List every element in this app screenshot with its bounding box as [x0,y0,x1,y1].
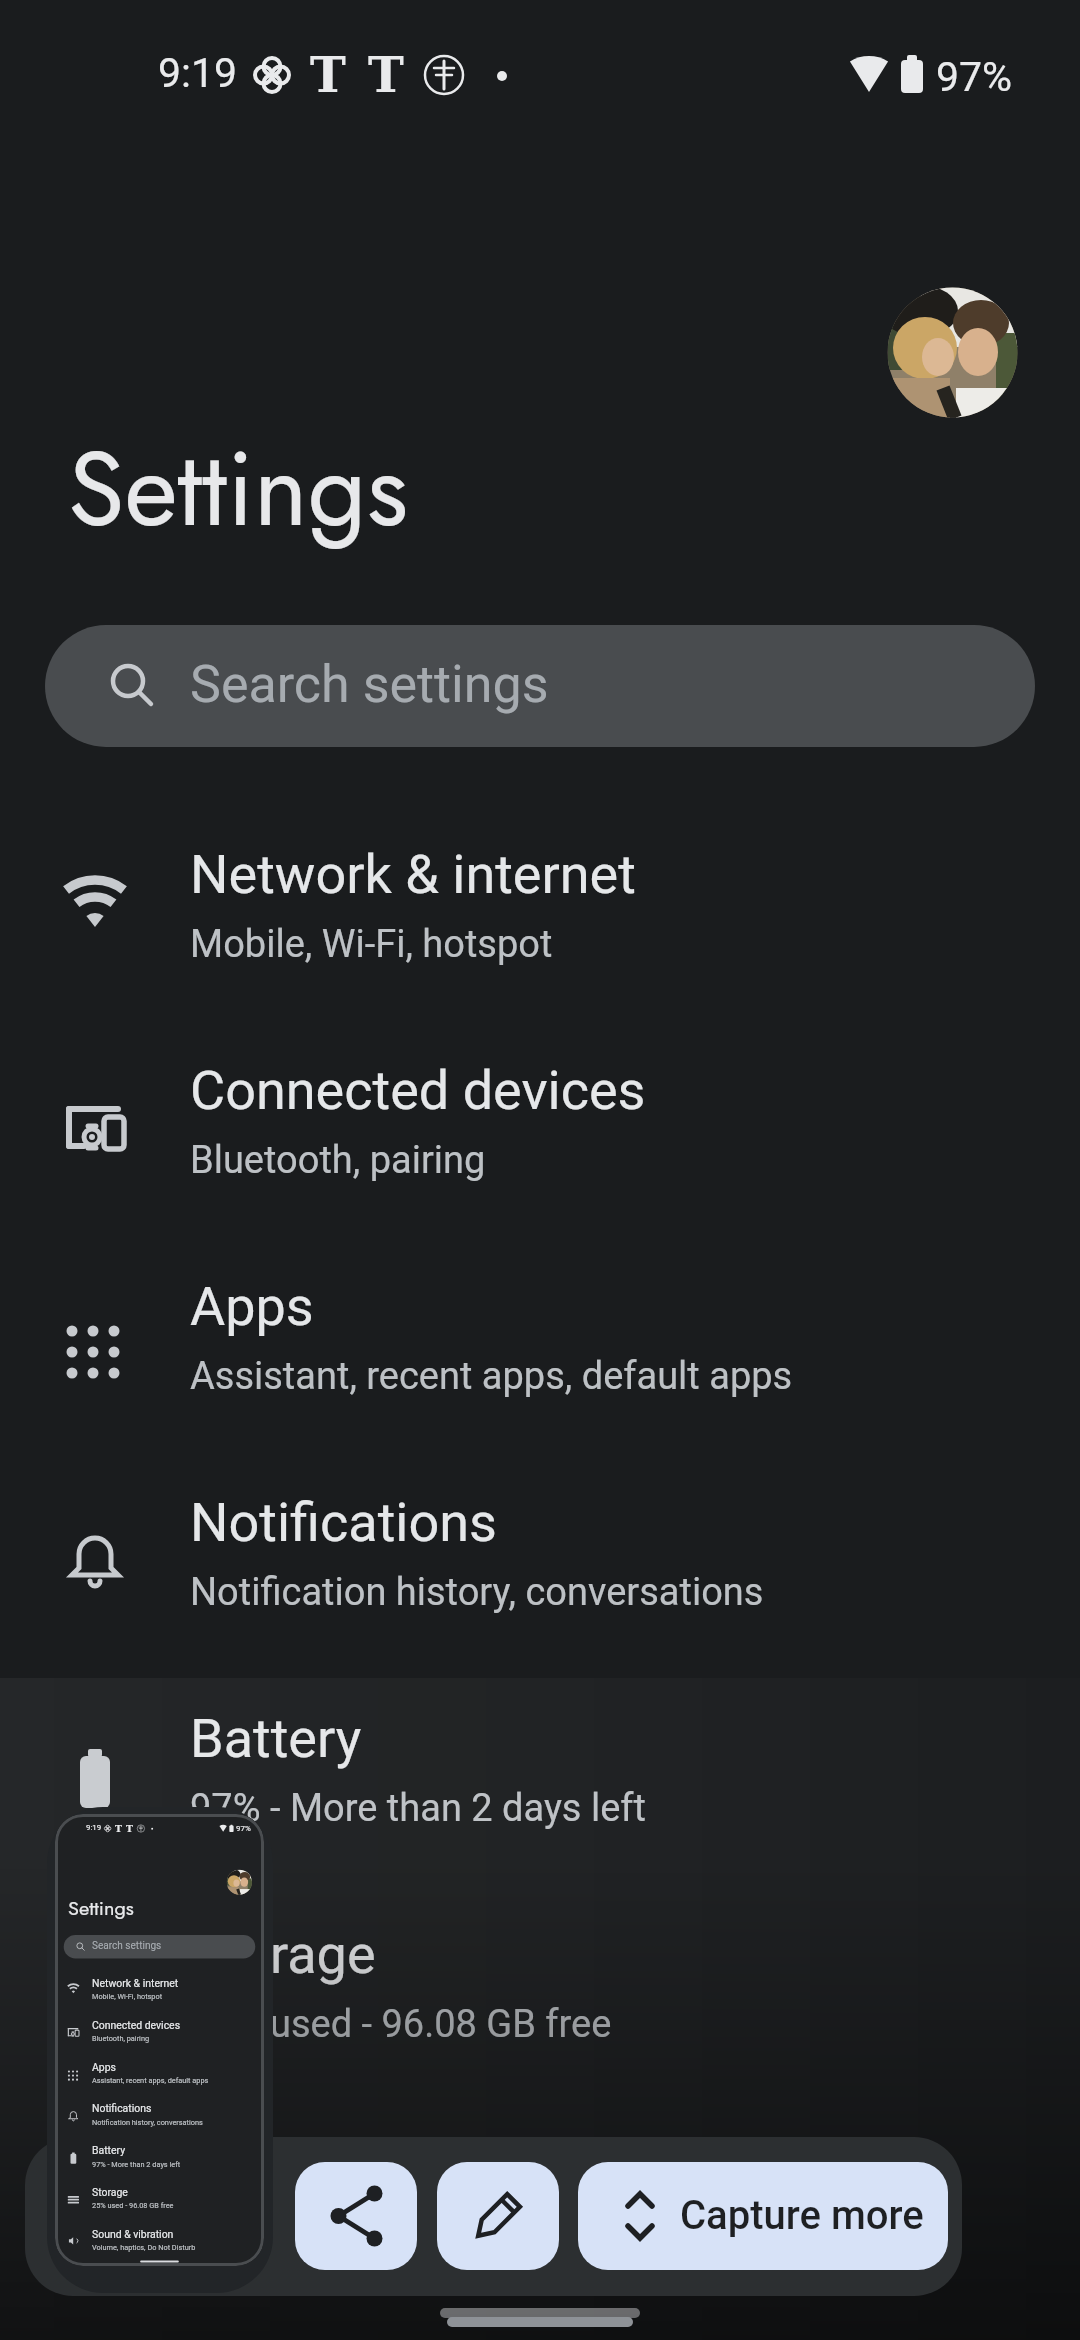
staticText: 9:19 [158,49,238,97]
staticText: T [310,47,346,103]
staticText: Notifications [92,2102,152,2114]
staticText: Connected devices [92,2019,181,2031]
staticText: Notification history, conversations [92,2118,203,2127]
staticText: Volume, haptics, Do Not Disturb [92,2243,196,2252]
staticText: Battery [92,2144,126,2156]
staticText: Notification history, conversations [190,1570,764,1615]
staticText: Search settings [190,654,549,715]
staticText: Network & internet [190,843,636,906]
button[interactable] [0,1910,1080,2126]
staticText: Settings [68,415,409,564]
staticText: Notifications [190,1491,497,1554]
button[interactable] [0,1046,1080,1262]
staticText: T [368,47,404,103]
button[interactable] [437,2162,559,2270]
staticText: Battery [190,1707,362,1770]
button[interactable] [0,1262,1080,1478]
staticText: Sound & vibration [92,2228,174,2240]
staticText: Volume, haptics, Do Not Disturb [190,2218,725,2263]
staticText: Sound & vibration [190,2139,611,2202]
staticText: Capture more [680,2192,924,2239]
staticText: Apps [92,2061,116,2073]
staticText: Connected devices [190,1059,646,1122]
staticText: Bluetooth, pairing [92,2034,150,2043]
staticText: Storage [92,2186,128,2198]
button[interactable] [45,625,1035,747]
staticText: 9:19 [86,1823,102,1832]
staticText: T [115,1823,122,1834]
staticText: Mobile, Wi-Fi, hotspot [190,922,553,967]
staticText: Storage [190,1923,376,1986]
staticText: Assistant, recent apps, default apps [92,2076,209,2085]
staticText: Apps [190,1275,314,1338]
staticText: T [126,1823,133,1834]
button[interactable] [295,2162,417,2270]
button[interactable] [0,1694,1080,1910]
staticText: Settings [68,1894,134,1923]
button[interactable] [0,1478,1080,1694]
staticText: Search settings [92,1940,162,1952]
staticText: 97% [936,53,1013,101]
staticText: Mobile, Wi-Fi, hotspot [92,1992,163,2001]
staticText: 97% - More than 2 days left [190,1786,646,1831]
staticText: 25% used - 96.08 GB free [92,2201,174,2210]
staticText: 97% [236,1824,251,1833]
button[interactable] [578,2162,948,2270]
staticText: Bluetooth, pairing [190,1138,486,1183]
staticText: 97% - More than 2 days left [92,2160,181,2169]
staticText: Network & internet [92,1977,179,1989]
button[interactable]: 9:19 [55,1814,264,2266]
staticText: Assistant, recent apps, default apps [190,1354,793,1399]
staticText: 25% used - 96.08 GB free [190,2002,612,2047]
button[interactable] [0,830,1080,1046]
